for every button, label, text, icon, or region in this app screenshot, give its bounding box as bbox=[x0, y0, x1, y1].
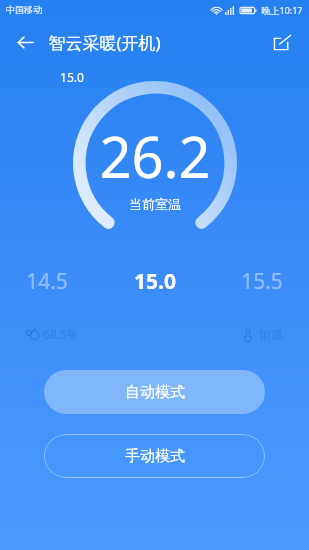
staticText: 15.0 bbox=[60, 69, 84, 85]
button[interactable]: 手动模式 bbox=[44, 434, 265, 478]
staticText: 晚上10:17 bbox=[261, 4, 303, 16]
staticText: 当前室温 bbox=[129, 196, 181, 212]
staticText: 中国移动 bbox=[6, 4, 42, 15]
staticText: 恒温 bbox=[259, 327, 283, 342]
button[interactable]: Edit bbox=[263, 23, 301, 61]
staticText: 15.5 bbox=[241, 267, 283, 296]
staticText: 自动模式 bbox=[125, 383, 185, 402]
staticText: 14.5 bbox=[26, 267, 68, 296]
staticText: 26.2 bbox=[99, 118, 211, 194]
staticText: 68.5% bbox=[43, 326, 77, 342]
button[interactable]: 15.0 bbox=[134, 267, 176, 296]
staticText: 手动模式 bbox=[125, 447, 185, 466]
button[interactable]: 自动模式 bbox=[44, 370, 265, 414]
button[interactable]: Back bbox=[6, 23, 44, 61]
staticText: 智云采暖(开机) bbox=[48, 31, 161, 54]
button[interactable]: 15.5 bbox=[241, 267, 283, 296]
staticText: 15.0 bbox=[134, 267, 176, 296]
button[interactable]: 14.5 bbox=[26, 267, 68, 296]
